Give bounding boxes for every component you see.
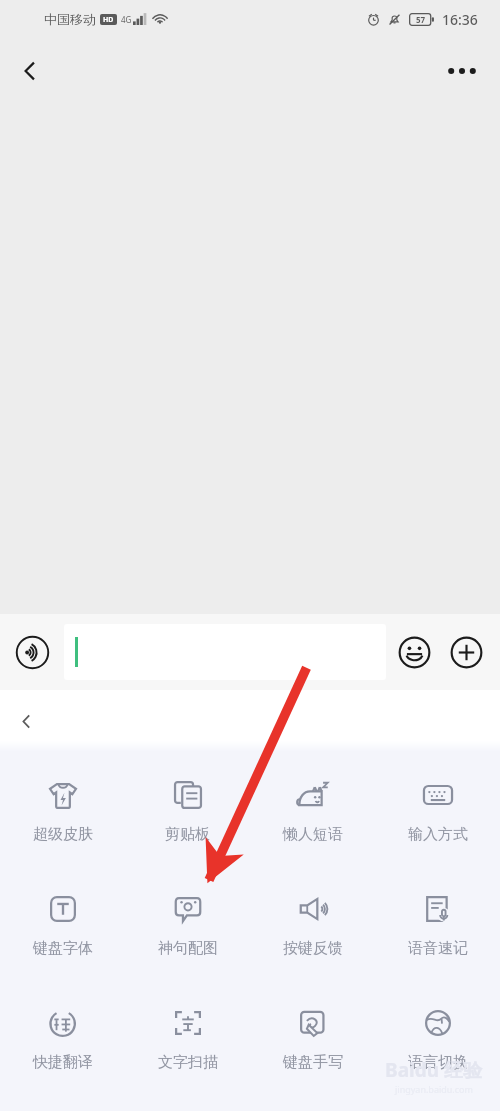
staticText: 文字扫描 [158,1053,218,1072]
staticText: 4G [121,14,132,25]
button[interactable]: Emoji [394,632,434,672]
staticText: 快捷翻译 [33,1053,93,1072]
button[interactable]: 键盘手写 [250,988,375,1072]
staticText: 键盘字体 [33,939,93,958]
staticText: jingyan.baidu.com [395,1083,473,1095]
button[interactable]: 快捷翻译 [0,988,125,1072]
staticText: 懒人短语 [283,825,343,844]
button[interactable]: Add [446,632,486,672]
staticText: 输入方式 [408,825,468,844]
staticText: 语音速记 [408,939,468,958]
button[interactable] [64,624,386,680]
button[interactable]: 神句配图 [125,874,250,958]
staticText: 中国移动 [44,11,96,27]
button[interactable]: 超级皮肤 [0,760,125,844]
staticText: 语言切换 [408,1053,468,1072]
staticText: 超级皮肤 [33,825,93,844]
button[interactable]: Back [6,47,54,95]
button[interactable]: 语音速记 [375,874,500,958]
button[interactable]: Voice input [9,629,55,675]
button[interactable]: 懒人短语 [250,760,375,844]
staticText: 按键反馈 [283,939,343,958]
staticText: 57 [416,14,426,25]
staticText: HD [103,15,114,25]
button[interactable]: More options [438,47,486,95]
button[interactable]: 语言切换 [375,988,500,1072]
staticText: 键盘手写 [283,1053,343,1072]
button[interactable]: 剪贴板 [125,760,250,844]
staticText: Baidu 经验 [385,1057,482,1083]
staticText: 神句配图 [158,939,218,958]
button[interactable]: 输入方式 [375,760,500,844]
button[interactable]: Back [4,699,48,743]
staticText: 剪贴板 [165,825,210,844]
button[interactable]: 按键反馈 [250,874,375,958]
button[interactable]: 键盘字体 [0,874,125,958]
button[interactable]: 文字扫描 [125,988,250,1072]
staticText: 16:36 [442,10,478,29]
